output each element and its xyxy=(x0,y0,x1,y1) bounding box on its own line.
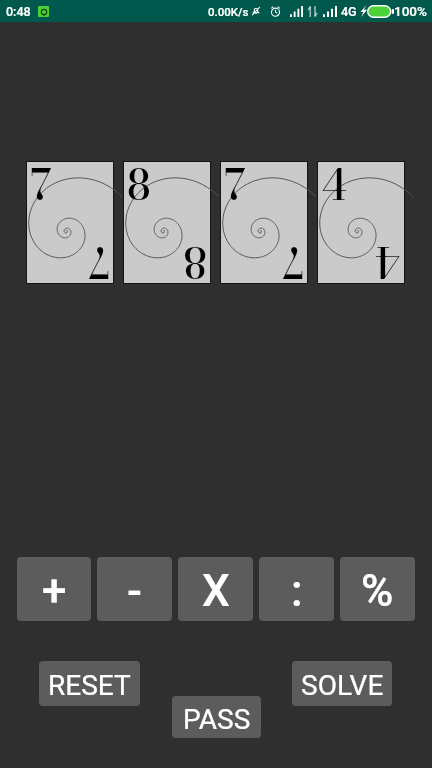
button[interactable]: 4 xyxy=(318,162,404,283)
staticText: PASS xyxy=(183,703,251,736)
staticText: 0:48 xyxy=(6,4,31,19)
staticText: RESET xyxy=(48,669,131,702)
button[interactable]: Plus xyxy=(17,557,91,621)
button[interactable]: Multiply xyxy=(178,557,253,621)
button[interactable]: Percent xyxy=(340,557,415,621)
staticText: % xyxy=(361,565,394,617)
staticText: 7 xyxy=(224,153,246,217)
button[interactable]: Minus xyxy=(97,557,172,621)
staticText: 4G xyxy=(341,4,357,19)
staticText: 8 xyxy=(183,230,207,294)
staticText: SOLVE xyxy=(301,669,384,702)
staticText: - xyxy=(127,565,142,617)
button[interactable]: 7 xyxy=(221,162,307,283)
button[interactable]: SOLVE xyxy=(292,661,392,706)
staticText: X xyxy=(202,565,230,617)
staticText: 7 xyxy=(88,230,110,294)
staticText: 4 xyxy=(321,153,347,217)
staticText: 100% xyxy=(394,3,427,19)
staticText: : xyxy=(291,565,303,617)
button[interactable]: PASS xyxy=(172,696,261,738)
staticText: 8 xyxy=(127,153,151,217)
button[interactable]: Divide xyxy=(259,557,334,621)
staticText: 4 xyxy=(375,230,401,294)
button[interactable]: 8 xyxy=(124,162,210,283)
staticText: 7 xyxy=(30,153,52,217)
staticText: + xyxy=(42,565,67,617)
staticText: 7 xyxy=(282,230,304,294)
button[interactable]: RESET xyxy=(39,661,140,706)
button[interactable]: 7 xyxy=(27,162,113,283)
staticText: 0.00K/s xyxy=(208,5,249,18)
